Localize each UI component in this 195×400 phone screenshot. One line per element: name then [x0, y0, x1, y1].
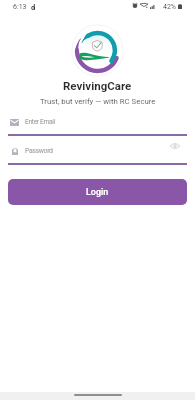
- staticText: Password: [25, 147, 53, 155]
- staticText: Enter Email: [25, 118, 55, 126]
- staticText: 42%: [163, 3, 176, 11]
- button[interactable]: Login: [8, 179, 187, 205]
- button[interactable]: Enter Email: [8, 113, 187, 136]
- staticText: Trust, but verify — with RC Secure: [40, 97, 156, 106]
- button[interactable]: Password: [8, 142, 187, 165]
- button[interactable]: Show password: [166, 140, 184, 151]
- staticText: 6:13: [13, 3, 27, 11]
- staticText: d: [31, 3, 36, 12]
- staticText: Login: [86, 187, 109, 198]
- staticText: RevivingCare: [63, 79, 132, 92]
